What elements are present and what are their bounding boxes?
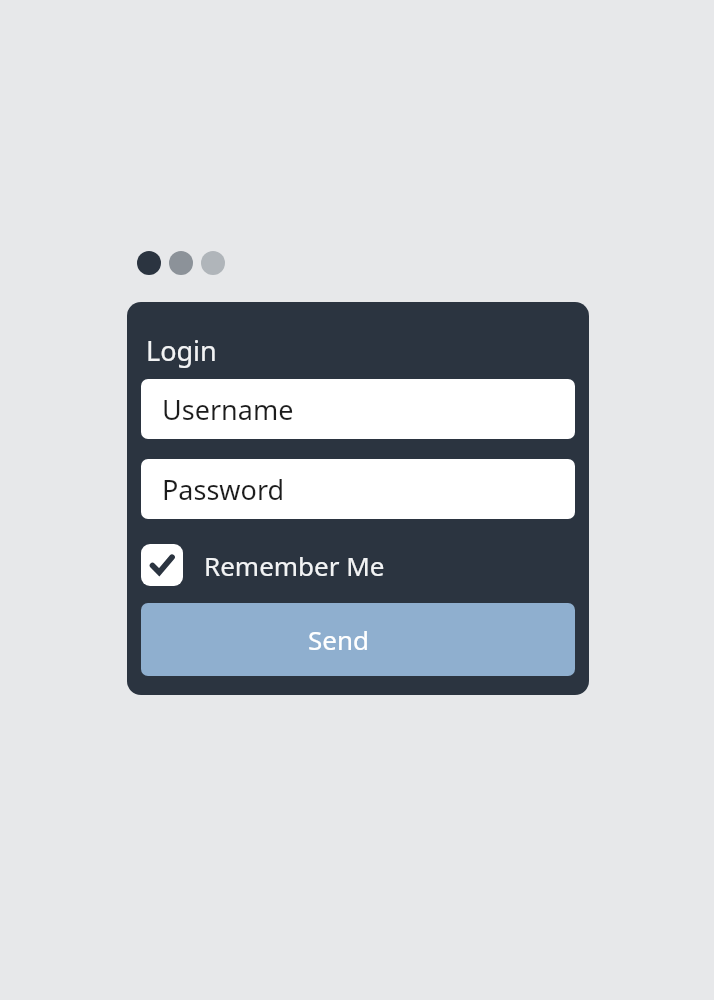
button[interactable]: Send: [141, 603, 575, 676]
staticText: Send: [308, 622, 369, 657]
button[interactable]: Username: [141, 379, 575, 439]
staticText: Password: [162, 471, 285, 508]
staticText: Login: [146, 332, 217, 369]
button[interactable]: Password: [141, 459, 575, 519]
staticText: Remember Me: [204, 548, 385, 583]
staticText: Username: [162, 391, 294, 428]
button[interactable]: Remember Me: [141, 538, 385, 592]
